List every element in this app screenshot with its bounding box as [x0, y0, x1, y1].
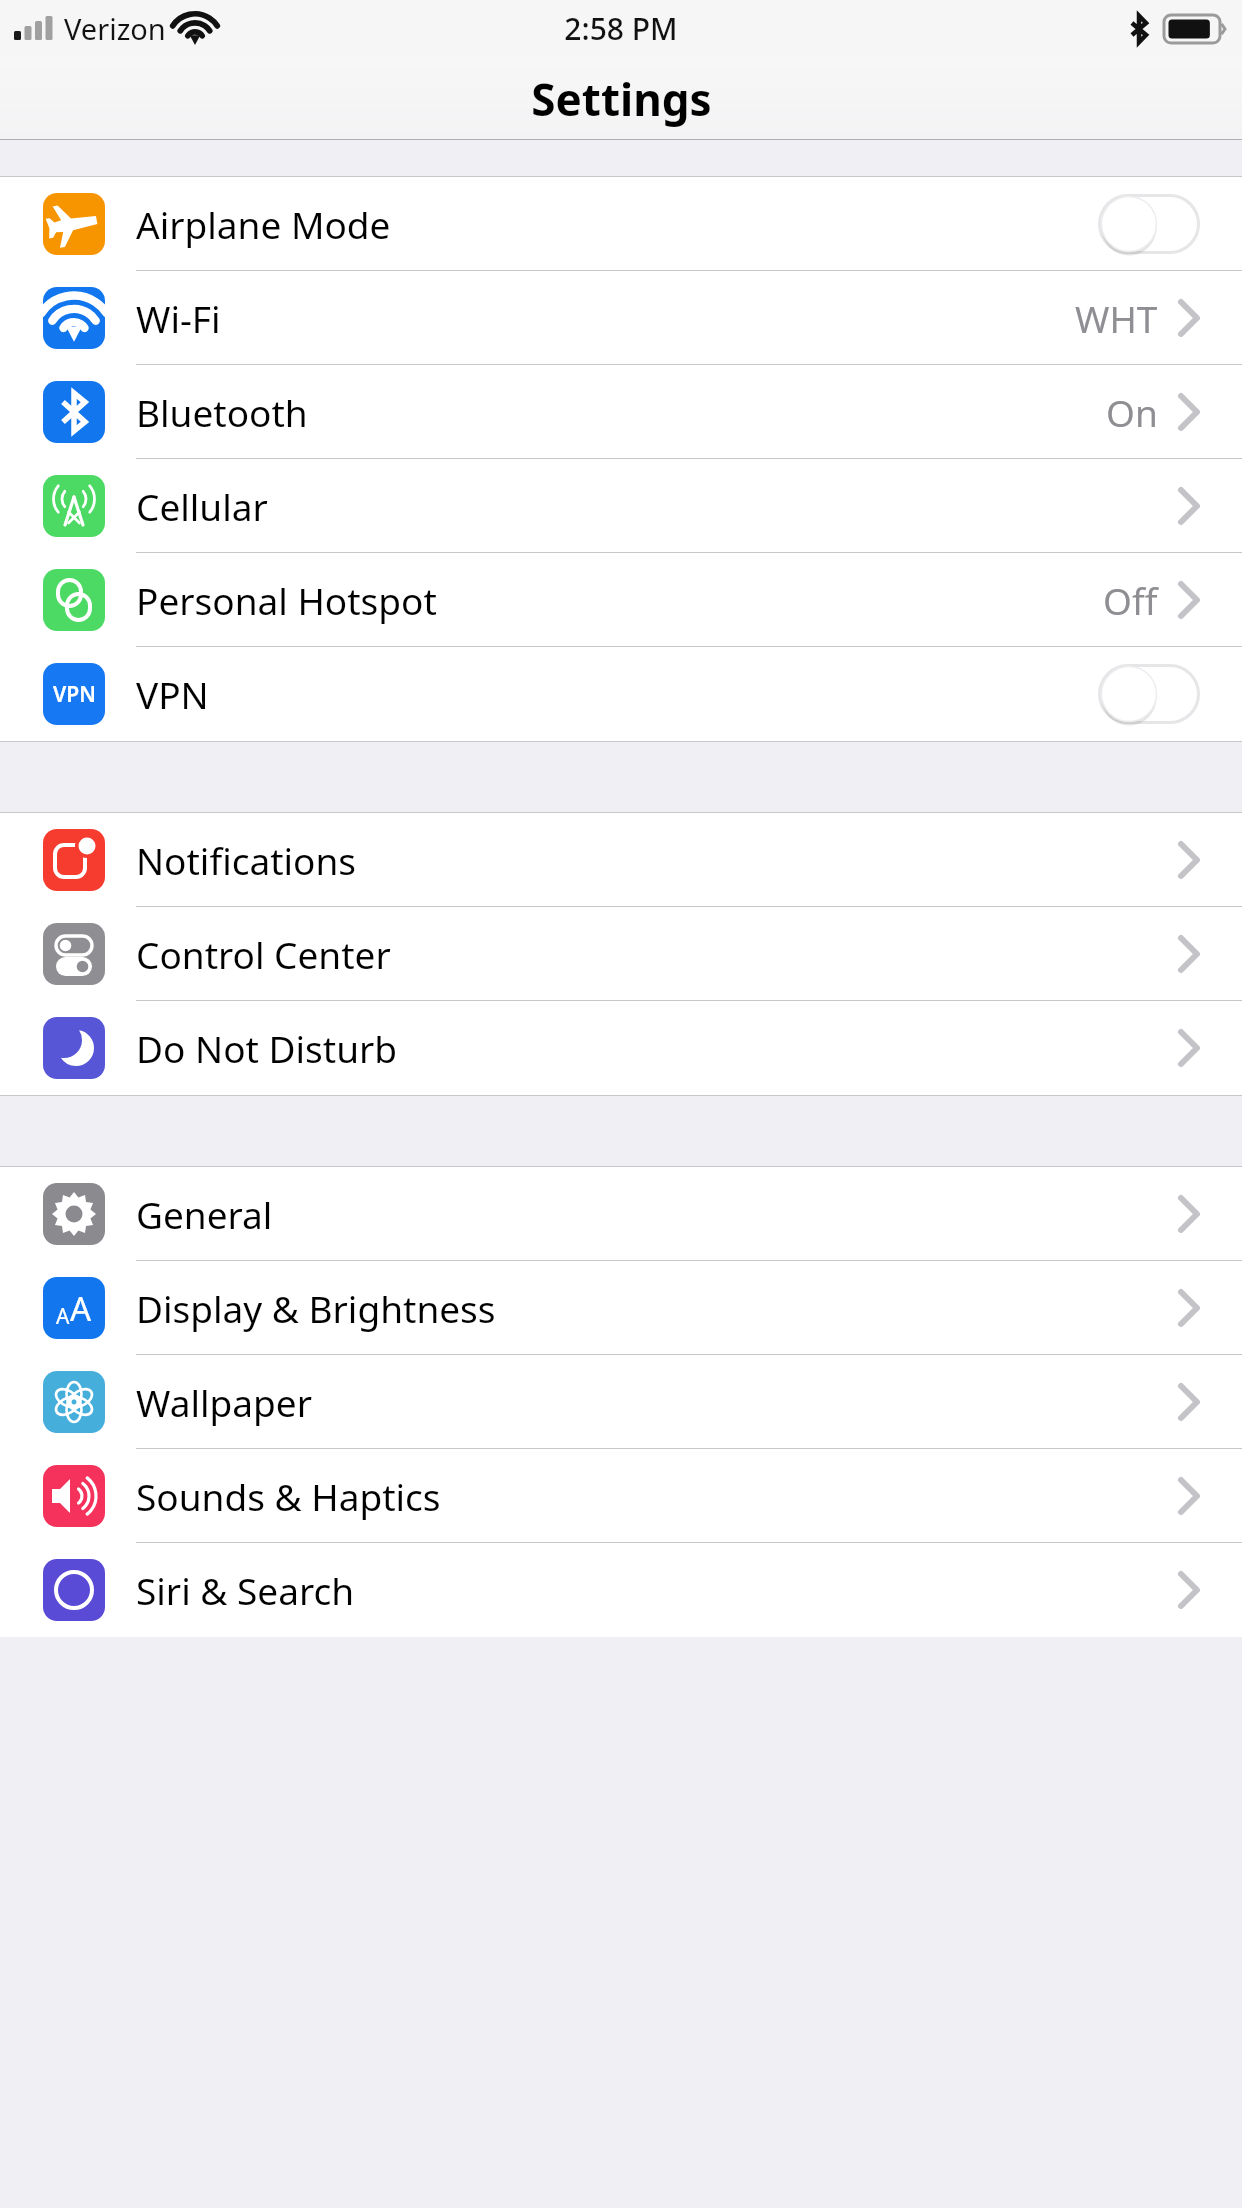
- button[interactable]: A: [0, 1261, 1242, 1355]
- staticText: On: [1106, 387, 1158, 437]
- button[interactable]: Do Not Disturb: [0, 1001, 1242, 1095]
- staticText: General: [136, 1189, 273, 1239]
- staticText: VPN: [136, 669, 209, 719]
- staticText: Verizon: [64, 9, 166, 48]
- staticText: Personal Hotspot: [136, 575, 437, 625]
- staticText: 2:58 PM: [564, 8, 678, 49]
- staticText: A: [70, 1286, 92, 1331]
- button[interactable]: General: [0, 1167, 1242, 1261]
- staticText: Settings: [531, 69, 712, 129]
- staticText: Wallpaper: [136, 1377, 312, 1427]
- button[interactable]: Toggle switch, off: [1098, 194, 1200, 254]
- button[interactable]: Wallpaper: [0, 1355, 1242, 1449]
- staticText: Off: [1103, 575, 1158, 625]
- staticText: Bluetooth: [136, 387, 308, 437]
- staticText: Airplane Mode: [136, 199, 391, 249]
- button[interactable]: Wi-Fi: [0, 271, 1242, 365]
- staticText: Sounds & Haptics: [136, 1471, 441, 1521]
- button[interactable]: Personal Hotspot: [0, 553, 1242, 647]
- button[interactable]: Airplane Mode: [0, 177, 1242, 271]
- button[interactable]: Notifications: [0, 813, 1242, 907]
- staticText: Display & Brightness: [136, 1283, 496, 1333]
- button[interactable]: Siri & Search: [0, 1543, 1242, 1637]
- button[interactable]: VPN: [0, 647, 1242, 741]
- button[interactable]: Sounds & Haptics: [0, 1449, 1242, 1543]
- staticText: Notifications: [136, 835, 357, 885]
- staticText: Siri & Search: [136, 1565, 355, 1615]
- button[interactable]: Toggle switch, off: [1098, 664, 1200, 724]
- staticText: WHT: [1075, 293, 1158, 343]
- staticText: Do Not Disturb: [136, 1023, 398, 1073]
- staticText: A: [56, 1302, 70, 1331]
- staticText: Wi-Fi: [136, 293, 221, 343]
- staticText: Control Center: [136, 929, 391, 979]
- button[interactable]: Control Center: [0, 907, 1242, 1001]
- button[interactable]: Cellular: [0, 459, 1242, 553]
- staticText: Cellular: [136, 481, 268, 531]
- staticText: VPN: [53, 680, 96, 709]
- button[interactable]: Bluetooth: [0, 365, 1242, 459]
